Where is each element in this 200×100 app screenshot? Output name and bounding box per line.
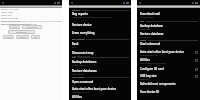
staticText: Scan — [12, 26, 18, 29]
staticText: Secure wiping of files deleted — [140, 62, 166, 65]
staticText: Refresh/reset components — [140, 82, 176, 86]
button[interactable]: Scan — [9, 25, 20, 29]
staticText: Restore databases — [72, 69, 97, 73]
staticText: Version 4.2.1 build — [1, 8, 19, 11]
staticText: On wifi only — [140, 28, 151, 31]
staticText: Automatic sync, off — [72, 91, 89, 94]
button[interactable]: Reboot — [16, 35, 29, 39]
staticText: Bug reports — [72, 12, 88, 16]
staticText: Automatic sync, off — [140, 54, 157, 57]
staticText: Server unsync — [72, 73, 85, 76]
staticText: All files — [72, 95, 82, 99]
staticText: Download — [16, 31, 27, 34]
button[interactable]: Start advanced — [137, 42, 200, 49]
button[interactable]: Backup databases — [69, 60, 131, 67]
staticText: Device: connected — [1, 17, 19, 20]
staticText: Configure SD card — [140, 67, 164, 71]
button[interactable]: Back — [69, 42, 131, 49]
staticText: Auto start after boot your device — [140, 50, 185, 54]
staticText: GENERAL — [72, 9, 81, 12]
button[interactable]: All files — [69, 95, 131, 99]
staticText: before you start the scan process now — [1, 23, 37, 26]
staticText: Status: ready — [1, 11, 14, 14]
staticText: Use SMTP/IMAP — [140, 16, 155, 19]
button[interactable]: USB key size — [137, 74, 200, 81]
staticText: On wifi only — [140, 36, 151, 39]
staticText: Reboot — [19, 36, 27, 39]
staticText: Download mail — [140, 12, 160, 16]
staticText: User settings — [72, 76, 85, 79]
staticText: Sync — [140, 20, 145, 23]
button[interactable]: Download — [8, 30, 35, 34]
button[interactable]: Your device ID — [137, 90, 200, 94]
staticText: Backup database — [140, 24, 163, 28]
staticText: Path: /storage/emulated/0/app — [1, 23, 31, 26]
staticText: Your device ID — [140, 90, 160, 94]
staticText: All files — [140, 58, 150, 62]
button[interactable]: Bug reports — [69, 12, 131, 19]
button[interactable]: Disconnect map — [69, 51, 131, 58]
staticText: About — [5, 36, 12, 39]
staticText: Back — [72, 42, 79, 46]
button[interactable]: Refresh/reset components — [137, 82, 200, 86]
staticText: Restore device — [72, 23, 92, 27]
staticText: Auto network failure — [72, 55, 91, 58]
staticText: Open command — [72, 80, 94, 84]
staticText: Exit — [34, 36, 38, 39]
staticText: Restore database — [140, 32, 164, 36]
staticText: on — [140, 46, 143, 49]
staticText: Device — [140, 39, 147, 42]
button[interactable]: About — [3, 35, 14, 39]
button[interactable]: Open command — [69, 80, 131, 87]
staticText: Mode: auto — [1, 14, 12, 17]
button[interactable]: Erase everything — [69, 31, 131, 35]
button[interactable]: Download mail — [137, 12, 200, 19]
button[interactable]: Restore database — [137, 32, 200, 39]
staticText: Default 2K — [140, 78, 150, 81]
staticText: Start advanced — [140, 42, 161, 46]
button[interactable]: All files — [137, 58, 200, 65]
button[interactable]: Auto start after boot your device — [69, 87, 131, 94]
button[interactable]: Exit — [31, 35, 40, 39]
staticText: Serial: 0x4A2F91B20 — [1, 20, 20, 23]
button[interactable]: Configure SD card — [137, 67, 200, 71]
staticText: USB key size — [140, 74, 157, 78]
button[interactable]: Restore device — [69, 23, 131, 27]
staticText: Continue — [27, 26, 37, 29]
staticText: Disconnect map — [72, 51, 94, 55]
staticText: Back settings — [72, 38, 85, 41]
staticText: Automatically send bug reports to develo… — [72, 16, 112, 19]
button[interactable]: Backup database — [137, 24, 200, 31]
staticText: sync — [72, 56, 77, 59]
staticText: On wifi, others — [72, 64, 85, 67]
staticText: auto — [72, 46, 77, 49]
staticText: Erase everything — [72, 31, 95, 35]
button[interactable]: Restore databases — [69, 69, 131, 76]
button[interactable]: Continue — [22, 25, 42, 29]
staticText: Backup databases — [72, 60, 97, 64]
staticText: on — [72, 84, 75, 87]
staticText: Auto start after boot your device — [72, 87, 117, 91]
button[interactable]: Auto start after boot your device — [137, 50, 200, 57]
staticText: Please make sure the device is connected… — [1, 20, 63, 23]
